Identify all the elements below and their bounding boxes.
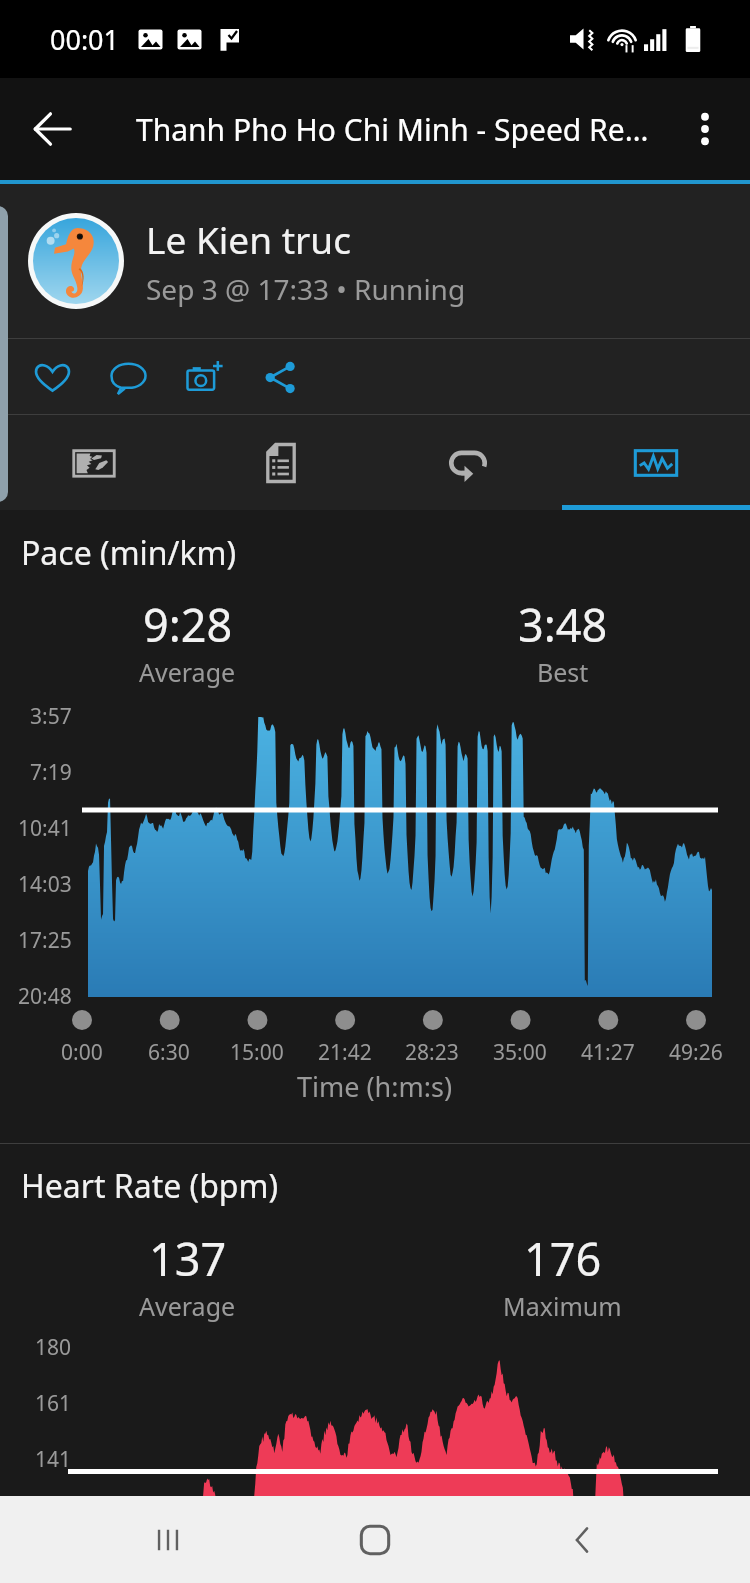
staticText: Best (537, 655, 589, 689)
staticText: Heart Rate (bpm) (21, 1164, 279, 1208)
staticText: Time (h:m:s) (297, 1068, 453, 1105)
button[interactable]: Details (187, 415, 374, 510)
staticText: 9:28 (143, 594, 233, 655)
staticText: 49:26 (669, 1038, 723, 1067)
staticText: Average (139, 655, 236, 689)
staticText: Thanh Pho Ho Chi Minh - Speed Re… (136, 109, 649, 150)
staticText: 3:57 (30, 702, 72, 731)
staticText: 10:41 (18, 814, 72, 843)
staticText: 21:42 (318, 1038, 372, 1067)
staticText: 14:03 (18, 870, 72, 899)
button[interactable]: More options (670, 94, 740, 164)
staticText: 7:19 (30, 758, 72, 787)
staticText: 3:48 (518, 594, 608, 655)
staticText: Sep 3 @ 17:33 • Running (146, 270, 466, 308)
button[interactable]: Share (250, 347, 310, 407)
button[interactable]: Add photo (174, 347, 234, 407)
staticText: 137 (149, 1228, 227, 1289)
button[interactable]: Graphs (562, 415, 750, 510)
button[interactable]: Like (22, 347, 82, 407)
staticText: Average (139, 1289, 236, 1323)
staticText: 00:01 (50, 21, 120, 58)
button[interactable]: Navigate up (14, 91, 90, 167)
staticText: 41:27 (581, 1038, 635, 1067)
staticText: 17:25 (18, 926, 72, 955)
button[interactable]: Recent apps (128, 1500, 208, 1580)
staticText: 20:48 (18, 982, 72, 1011)
staticText: Maximum (503, 1289, 622, 1323)
staticText: 28:23 (405, 1038, 459, 1067)
staticText: 161 (35, 1389, 72, 1418)
staticText: Le Kien truc (146, 214, 351, 264)
staticText: 176 (524, 1228, 602, 1289)
button[interactable]: Comment (98, 347, 158, 407)
button[interactable]: Map (0, 415, 187, 510)
button[interactable]: Laps (374, 415, 562, 510)
staticText: 141 (35, 1445, 72, 1474)
button[interactable]: Back (543, 1500, 623, 1580)
button[interactable]: Home (335, 1500, 415, 1580)
staticText: 35:00 (493, 1038, 547, 1067)
staticText: 180 (35, 1333, 72, 1362)
staticText: Pace (min/km) (21, 531, 237, 575)
staticText: 15:00 (230, 1038, 284, 1067)
staticText: 0:00 (61, 1038, 103, 1067)
staticText: 6:30 (148, 1038, 190, 1067)
